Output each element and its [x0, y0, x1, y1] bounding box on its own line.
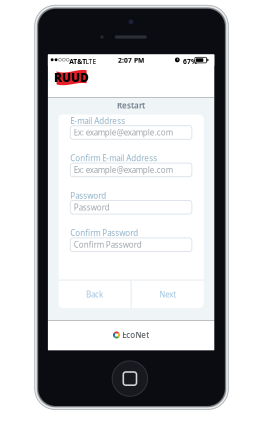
staticText: Ex: example@example.com: [74, 127, 173, 138]
staticText: 2:07 PM: [118, 56, 144, 65]
button[interactable]: Next: [132, 280, 204, 308]
staticText: Next: [159, 289, 176, 300]
staticText: Restart: [117, 100, 145, 111]
staticText: LTE: [85, 57, 96, 66]
button[interactable]: Back: [58, 280, 131, 308]
staticText: RUUD: [54, 69, 89, 85]
staticText: Back: [86, 289, 103, 300]
staticText: Password: [70, 190, 106, 201]
staticText: AT&T: [69, 57, 86, 66]
staticText: 67%: [183, 57, 197, 66]
staticText: Password: [74, 202, 110, 213]
staticText: E-mail Address: [70, 115, 125, 126]
staticText: Confirm Password: [70, 228, 138, 238]
staticText: Ex: example@example.com: [74, 165, 173, 175]
staticText: Confirm Password: [74, 239, 142, 250]
staticText: Confirm E-mail Address: [70, 153, 157, 163]
staticText: EcoNet: [122, 330, 149, 340]
